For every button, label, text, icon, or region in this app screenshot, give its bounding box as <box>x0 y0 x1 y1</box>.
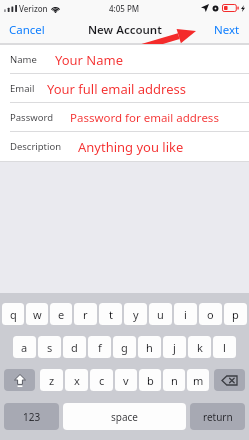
button[interactable]: g <box>113 336 136 358</box>
staticText: Your full email address <box>47 80 186 98</box>
button[interactable]: a <box>13 336 36 358</box>
staticText: b <box>147 373 154 388</box>
button[interactable]: i <box>174 303 197 325</box>
staticText: Name <box>10 53 37 66</box>
staticText: Email <box>10 82 35 95</box>
staticText: Verizon <box>19 3 48 14</box>
button[interactable]: v <box>115 369 137 391</box>
staticText: j <box>173 340 176 355</box>
staticText: Anything you like <box>78 138 184 156</box>
button[interactable]: j <box>163 336 186 358</box>
staticText: d <box>71 340 78 355</box>
button[interactable]: Shift <box>4 369 35 391</box>
button[interactable]: z <box>40 369 63 391</box>
staticText: Description <box>10 140 62 153</box>
staticText: Next <box>214 22 240 38</box>
staticText: w <box>33 307 42 322</box>
staticText: f <box>98 340 102 355</box>
button[interactable]: s <box>38 336 61 358</box>
button[interactable]: p <box>224 303 247 325</box>
staticText: e <box>58 307 65 322</box>
button[interactable]: 123 <box>4 403 59 430</box>
staticText: g <box>121 340 128 355</box>
button[interactable]: o <box>199 303 222 325</box>
button[interactable]: r <box>74 303 97 325</box>
other: Annotation arrow <box>0 16 249 44</box>
staticText: return <box>203 410 233 424</box>
button[interactable]: l <box>213 336 236 358</box>
button[interactable]: y <box>124 303 147 325</box>
button[interactable]: w <box>26 303 48 325</box>
staticText: s <box>47 340 53 355</box>
button[interactable]: space <box>63 403 186 430</box>
button[interactable]: Description <box>0 132 249 161</box>
button[interactable]: Backspace <box>214 369 245 391</box>
button[interactable]: f <box>88 336 111 358</box>
button[interactable]: x <box>65 369 88 391</box>
staticText: c <box>99 373 105 388</box>
staticText: h <box>146 340 153 355</box>
staticText: n <box>171 373 178 388</box>
button[interactable]: m <box>187 369 209 391</box>
staticText: Password <box>10 111 53 124</box>
staticText: 4:05 PM <box>109 3 140 14</box>
button[interactable]: k <box>188 336 211 358</box>
button[interactable]: return <box>190 403 245 430</box>
button[interactable]: h <box>138 336 161 358</box>
staticText: i <box>184 307 187 322</box>
button[interactable]: Next <box>205 16 249 44</box>
staticText: z <box>49 373 55 388</box>
staticText: r <box>83 307 88 322</box>
button[interactable]: Name <box>0 45 249 74</box>
staticText: Your Name <box>55 51 124 69</box>
button[interactable]: c <box>90 369 113 391</box>
staticText: x <box>74 373 80 388</box>
staticText: o <box>207 307 214 322</box>
button[interactable]: e <box>50 303 72 325</box>
button[interactable]: u <box>149 303 172 325</box>
staticText: New Account <box>88 22 162 38</box>
button[interactable]: Email <box>0 74 249 103</box>
staticText: k <box>197 340 203 355</box>
staticText: Cancel <box>9 22 45 38</box>
staticText: 123 <box>23 410 41 424</box>
button[interactable]: q <box>2 303 24 325</box>
button[interactable]: Cancel <box>0 16 54 44</box>
staticText: v <box>123 373 129 388</box>
staticText: l <box>223 340 226 355</box>
staticText: t <box>109 307 113 322</box>
button[interactable]: n <box>163 369 185 391</box>
staticText: y <box>133 307 139 322</box>
button[interactable]: b <box>139 369 161 391</box>
staticText: u <box>157 307 164 322</box>
button[interactable]: d <box>63 336 86 358</box>
button[interactable]: Password <box>0 103 249 132</box>
staticText: m <box>193 373 204 388</box>
staticText: p <box>232 307 239 322</box>
staticText: q <box>10 307 17 322</box>
button[interactable]: t <box>99 303 122 325</box>
staticText: space <box>111 410 138 424</box>
staticText: Password for email address <box>70 110 219 126</box>
staticText: a <box>21 340 28 355</box>
